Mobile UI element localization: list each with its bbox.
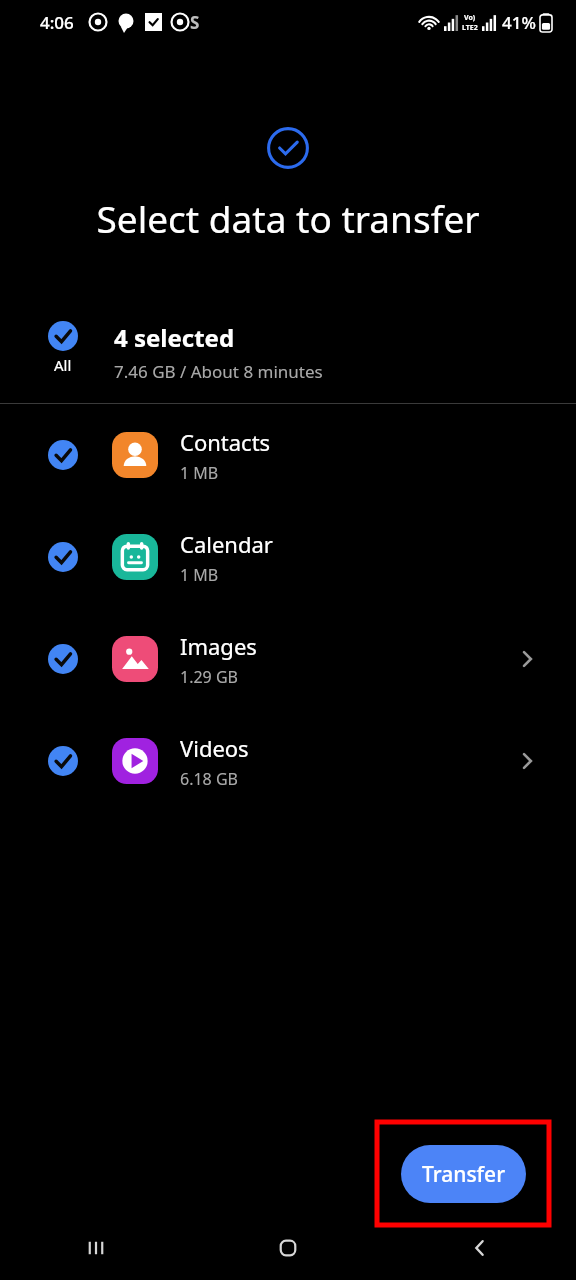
staticText: 7.46 GB / About 8 minutes bbox=[114, 360, 323, 383]
button[interactable]: Recent apps bbox=[0, 1216, 192, 1280]
staticText: Vo) bbox=[464, 13, 476, 23]
button[interactable]: All bbox=[0, 321, 576, 403]
button[interactable]: Contacts bbox=[0, 404, 576, 506]
staticText: 1 MB bbox=[180, 462, 219, 484]
staticText: Contacts bbox=[180, 427, 271, 457]
button[interactable]: Back bbox=[384, 1216, 576, 1280]
staticText: 1.29 GB bbox=[180, 666, 238, 688]
staticText: 1 MB bbox=[180, 564, 219, 586]
button[interactable]: Calendar bbox=[0, 506, 576, 608]
staticText: Videos bbox=[180, 733, 249, 763]
staticText: Calendar bbox=[180, 529, 273, 559]
button[interactable]: Transfer bbox=[401, 1145, 526, 1203]
staticText: LTE2 bbox=[462, 23, 478, 33]
staticText: Select data to transfer bbox=[16, 193, 560, 243]
staticText: Transfer bbox=[422, 1160, 506, 1189]
staticText: S bbox=[190, 11, 200, 34]
staticText: 6.18 GB bbox=[180, 768, 238, 790]
button[interactable]: Home bbox=[192, 1216, 384, 1280]
staticText: 41% bbox=[502, 11, 536, 34]
staticText: 4:06 bbox=[40, 11, 74, 34]
button[interactable]: Images bbox=[0, 608, 576, 710]
button[interactable]: Videos bbox=[0, 710, 576, 812]
staticText: All bbox=[54, 355, 72, 375]
staticText: 4 selected bbox=[114, 321, 235, 354]
staticText: Images bbox=[180, 631, 257, 661]
